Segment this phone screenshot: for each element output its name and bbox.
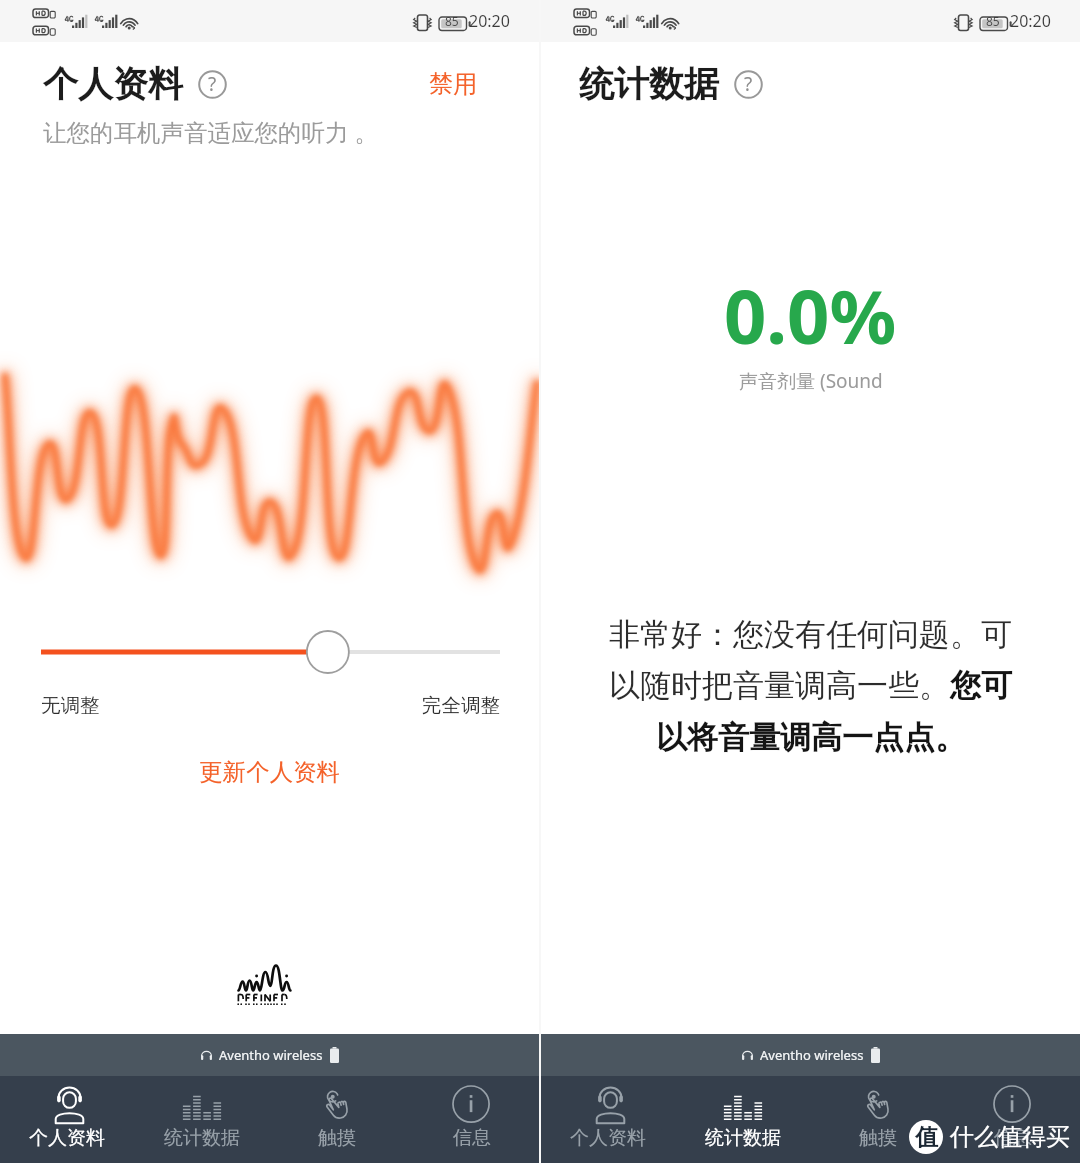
button[interactable]: Help (198, 70, 227, 99)
staticText: 完全调整 (422, 693, 500, 718)
staticText: 85 (986, 13, 1000, 29)
button[interactable]: 禁用 (425, 65, 481, 103)
staticText: 20:20 (469, 10, 510, 32)
staticText: 什么值得买 (950, 1122, 1070, 1152)
staticText: 以将音量调高一点点。 (656, 718, 966, 757)
staticText: 0.0% (724, 265, 897, 366)
staticText: 值 (915, 1123, 938, 1152)
button[interactable]: Aventho wireless (541, 1034, 1080, 1076)
button[interactable]: 更新个人资料 (185, 749, 354, 795)
button[interactable]: 触摸 (810, 1076, 945, 1163)
staticText: 更新个人资料 (199, 757, 340, 787)
staticText: ? (744, 71, 753, 97)
staticText: 20:20 (1010, 10, 1051, 32)
staticText: ? (208, 71, 217, 97)
button[interactable] (0, 610, 539, 670)
staticText: 统计数据 (579, 62, 719, 106)
staticText: 统计数据 (705, 1126, 781, 1150)
button[interactable]: 信息 (404, 1076, 539, 1163)
staticText: Aventho wireless (219, 1046, 323, 1064)
button[interactable]: Aventho wireless (0, 1034, 539, 1076)
staticText: 以随时把音量调高一些。 (609, 666, 950, 705)
button[interactable]: 个人资料 (541, 1076, 675, 1163)
staticText: 信息 (453, 1126, 491, 1150)
staticText: 信息 (994, 1126, 1032, 1150)
staticText: 禁用 (429, 69, 477, 99)
button[interactable]: 触摸 (269, 1076, 404, 1163)
staticText: 个人资料 (43, 62, 183, 106)
staticText: 个人资料 (29, 1126, 105, 1150)
staticText: 让您的耳机声音适应您的听力 。 (43, 116, 379, 148)
staticText: 声音剂量 (Sound (739, 368, 883, 394)
button[interactable]: 统计数据 (675, 1076, 810, 1163)
staticText: 个人资料 (570, 1126, 646, 1150)
staticText: 无调整 (41, 693, 100, 718)
button[interactable]: 统计数据 (134, 1076, 269, 1163)
button[interactable]: 信息 (945, 1076, 1080, 1163)
staticText: 触摸 (859, 1126, 897, 1150)
staticText: 您可 (950, 666, 1012, 705)
staticText: 触摸 (318, 1126, 356, 1150)
staticText: 非常好：您没有任何问题。可 (609, 615, 1012, 654)
button[interactable]: Help (734, 70, 763, 99)
staticText: 统计数据 (164, 1126, 240, 1150)
button[interactable]: 个人资料 (0, 1076, 134, 1163)
staticText: Aventho wireless (760, 1046, 864, 1064)
staticText: 85 (445, 13, 459, 29)
